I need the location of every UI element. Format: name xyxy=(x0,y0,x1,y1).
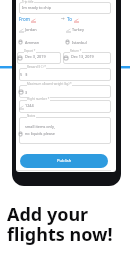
staticText: Trip title xyxy=(22,0,34,4)
staticText: → xyxy=(61,16,65,21)
staticText: Notes xyxy=(27,114,36,118)
button[interactable]: Publish xyxy=(20,154,108,168)
staticText: Maximum allowed weight (kg) * xyxy=(27,82,72,86)
staticText: Add your xyxy=(7,202,89,227)
staticText: 3 xyxy=(25,90,28,95)
staticText: no liquids please xyxy=(25,131,55,136)
staticText: Dec 13, 2019 xyxy=(71,54,94,59)
staticText: To xyxy=(67,16,72,22)
staticText: Flight number * xyxy=(27,97,50,101)
staticText: Return * xyxy=(70,49,82,53)
staticText: Amman xyxy=(25,40,40,45)
staticText: flights now! xyxy=(7,222,113,247)
button[interactable] xyxy=(19,2,111,14)
staticText: 5 $ xyxy=(20,72,28,77)
staticText: Jordan xyxy=(25,27,37,32)
staticText: Publish xyxy=(57,158,72,164)
staticText: small items only, xyxy=(25,124,55,129)
staticText: Turkey xyxy=(72,27,84,32)
staticText: Istanbul xyxy=(72,40,87,45)
staticText: 1244 xyxy=(25,103,34,108)
staticText: Im ready to chip xyxy=(22,5,51,10)
staticText: Dec 3, 2019 xyxy=(25,54,46,59)
button[interactable]: From xyxy=(19,16,31,22)
staticText: Reward $ ( ) * xyxy=(27,65,46,69)
staticText: Depart * xyxy=(24,49,36,53)
staticText: From xyxy=(19,16,31,22)
button[interactable]: To xyxy=(67,16,72,22)
